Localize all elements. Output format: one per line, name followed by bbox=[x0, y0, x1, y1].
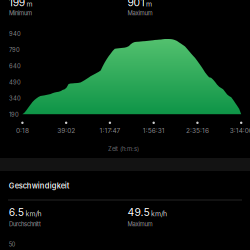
staticText: 640 bbox=[9, 62, 21, 70]
staticText: 50 bbox=[9, 241, 16, 248]
staticText: 190 bbox=[9, 111, 19, 118]
staticText: Minimum bbox=[9, 10, 32, 17]
staticText: 901 bbox=[127, 0, 144, 9]
staticText: 1:56:31 bbox=[143, 127, 165, 134]
staticText: 2:35:16 bbox=[186, 127, 209, 134]
staticText: m bbox=[146, 0, 152, 8]
staticText: km/h bbox=[25, 210, 41, 218]
staticText: Zeit (h:m:s) bbox=[108, 145, 139, 152]
staticText: 340 bbox=[9, 95, 21, 102]
staticText: 1:17:47 bbox=[99, 127, 120, 134]
staticText: 49.5 bbox=[127, 206, 149, 219]
staticText: Geschwindigkeit bbox=[9, 181, 70, 190]
staticText: Durchschnitt bbox=[9, 221, 41, 228]
staticText: 0:18 bbox=[16, 127, 29, 134]
staticText: Maximum bbox=[128, 10, 153, 17]
staticText: Maximum bbox=[128, 221, 153, 228]
staticText: 199 bbox=[9, 0, 25, 9]
staticText: m bbox=[26, 0, 32, 8]
staticText: 39:02 bbox=[57, 127, 75, 134]
staticText: km/h bbox=[151, 210, 167, 218]
staticText: 940 bbox=[9, 30, 21, 37]
staticText: 790 bbox=[9, 46, 20, 53]
staticText: 3:14:00 bbox=[230, 127, 250, 134]
staticText: 6.5 bbox=[9, 206, 24, 219]
staticText: 490 bbox=[9, 79, 21, 86]
